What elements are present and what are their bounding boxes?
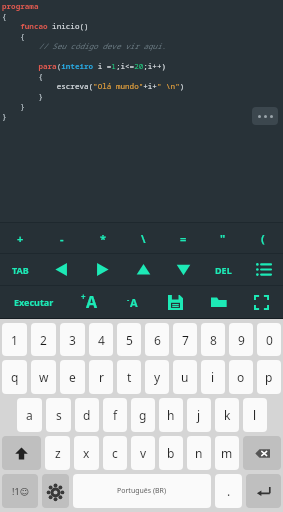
staticText: } (2, 101, 25, 111)
button[interactable]: - (41, 223, 82, 253)
button[interactable]: Move left (41, 254, 82, 285)
staticText: p (265, 369, 273, 385)
staticText: - (60, 231, 64, 246)
staticText: n (195, 445, 203, 461)
button[interactable]: + (0, 223, 41, 253)
button[interactable]: l (243, 398, 267, 432)
staticText: r (99, 369, 104, 385)
button[interactable]: Open folder (197, 286, 240, 318)
button[interactable]: h (159, 398, 183, 432)
button[interactable]: a (17, 398, 42, 432)
button[interactable]: r (89, 360, 113, 394)
button[interactable]: Move up (123, 254, 163, 285)
staticText: A (130, 295, 138, 310)
staticText: t (127, 369, 132, 385)
button[interactable]: List (243, 254, 283, 285)
button[interactable]: u (173, 360, 197, 394)
staticText: funcao inicio() (2, 21, 89, 31)
staticText: z (55, 445, 61, 461)
staticText: !1☺ (12, 485, 29, 497)
button[interactable]: Backspace (243, 436, 281, 470)
button[interactable]: x (74, 436, 99, 470)
button[interactable]: 2 (31, 323, 56, 356)
staticText: b (167, 445, 175, 461)
button[interactable]: t (117, 360, 141, 394)
button[interactable]: d (75, 398, 99, 432)
staticText: u (181, 369, 189, 385)
button[interactable]: Enter (246, 474, 281, 508)
button[interactable]: 7 (173, 323, 197, 356)
staticText: DEL (215, 264, 232, 276)
staticText: { (2, 31, 25, 41)
button[interactable]: Increase font size (68, 286, 111, 318)
button[interactable]: Fullscreen (240, 286, 283, 318)
button[interactable]: TAB (0, 254, 41, 285)
button[interactable]: 6 (145, 323, 169, 356)
staticText: - (127, 295, 130, 305)
button[interactable]: Move right (82, 254, 123, 285)
button[interactable]: 8 (201, 323, 225, 356)
button[interactable]: 0 (257, 323, 281, 356)
button[interactable]: m (215, 436, 239, 470)
staticText: g (139, 407, 147, 423)
button[interactable]: w (31, 360, 56, 394)
staticText: programa (2, 1, 39, 11)
button[interactable]: \ (123, 223, 163, 253)
staticText: k (224, 407, 231, 423)
button[interactable]: DEL (203, 254, 243, 285)
button[interactable]: f (103, 398, 127, 432)
staticText: 9 (238, 332, 245, 348)
button[interactable]: 5 (117, 323, 141, 356)
staticText: 4 (98, 332, 105, 348)
button[interactable]: More options (252, 107, 278, 125)
button[interactable]: n (187, 436, 211, 470)
staticText: escreva("Olá mundo"+i+" \n") (2, 81, 185, 91)
button[interactable]: Português (BR) (73, 474, 211, 508)
button[interactable]: 1 (2, 323, 27, 356)
staticText: v (140, 445, 147, 461)
staticText: j (197, 407, 201, 423)
button[interactable]: o (229, 360, 253, 394)
staticText: l (253, 407, 257, 423)
button[interactable]: q (2, 360, 27, 394)
staticText: = (180, 231, 187, 246)
button[interactable]: Move down (163, 254, 203, 285)
staticText: 2 (40, 332, 47, 348)
button[interactable]: j (187, 398, 211, 432)
button[interactable]: Decrease font size (111, 286, 154, 318)
button[interactable]: s (46, 398, 71, 432)
button[interactable]: 9 (229, 323, 253, 356)
button[interactable]: Save (154, 286, 197, 318)
button[interactable]: i (201, 360, 225, 394)
button[interactable]: . (215, 474, 242, 508)
staticText: c (112, 445, 118, 461)
staticText: } (2, 111, 7, 121)
button[interactable]: " (203, 223, 243, 253)
button[interactable]: !1☺ (2, 474, 38, 508)
staticText: o (237, 369, 245, 385)
button[interactable]: 4 (89, 323, 113, 356)
staticText: f (113, 407, 118, 423)
button[interactable]: y (145, 360, 169, 394)
button[interactable]: = (163, 223, 203, 253)
button[interactable]: c (103, 436, 127, 470)
button[interactable]: g (131, 398, 155, 432)
button[interactable]: p (257, 360, 281, 394)
button[interactable]: Executar (0, 286, 68, 318)
button[interactable]: Settings (42, 474, 69, 508)
staticText: { (2, 11, 7, 21)
button[interactable]: ( (243, 223, 283, 253)
button[interactable]: b (159, 436, 183, 470)
staticText: w (39, 369, 49, 385)
staticText: A (86, 291, 98, 313)
button[interactable]: z (45, 436, 70, 470)
button[interactable]: * (82, 223, 123, 253)
button[interactable]: Shift (2, 436, 41, 470)
button[interactable]: v (131, 436, 155, 470)
staticText: // Seu código deve vir aqui. (2, 41, 167, 51)
button[interactable]: 3 (60, 323, 85, 356)
staticText: 5 (126, 332, 133, 348)
staticText: h (167, 407, 175, 423)
button[interactable]: e (60, 360, 85, 394)
button[interactable]: k (215, 398, 239, 432)
